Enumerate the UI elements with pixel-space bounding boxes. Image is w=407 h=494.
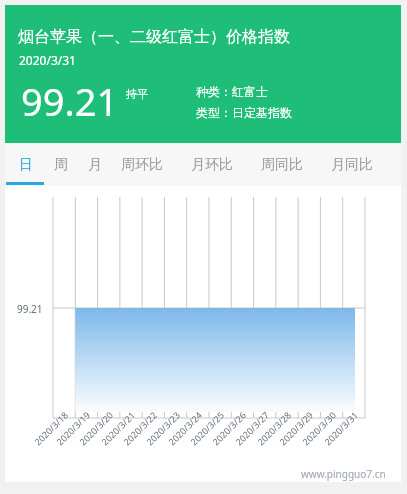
staticText: 月 xyxy=(88,156,102,174)
button[interactable]: 月同比 xyxy=(323,143,381,186)
staticText: 2020/3/25 xyxy=(174,409,226,461)
staticText: 2020/3/30 xyxy=(286,409,338,461)
staticText: www.pingguo7.cn xyxy=(301,467,386,481)
button[interactable]: 月 xyxy=(79,143,111,186)
staticText: 2020/3/23 xyxy=(130,409,182,461)
staticText: 持平 xyxy=(126,87,148,101)
staticText: 周环比 xyxy=(121,156,163,174)
staticText: 2020/3/26 xyxy=(196,409,248,461)
button[interactable]: 周同比 xyxy=(253,143,311,186)
staticText: 种类：红富士 xyxy=(196,84,268,99)
staticText: 2020/3/27 xyxy=(219,409,271,461)
staticText: 周同比 xyxy=(261,156,303,174)
staticText: 2020/3/20 xyxy=(63,409,115,461)
staticText: 2020/3/28 xyxy=(241,409,293,461)
button[interactable]: 月环比 xyxy=(183,143,241,186)
staticText: 周 xyxy=(54,156,68,174)
staticText: 2020/3/22 xyxy=(107,409,159,461)
staticText: 烟台苹果（一、二级红富士）价格指数 xyxy=(18,27,290,47)
staticText: 日 xyxy=(19,156,33,174)
button[interactable]: 日 xyxy=(10,143,42,186)
staticText: 2020/3/29 xyxy=(263,409,315,461)
staticText: 99.21 xyxy=(17,302,43,316)
staticText: 2020/3/19 xyxy=(40,409,92,461)
staticText: 2020/3/21 xyxy=(85,409,137,461)
staticText: 2020/3/31 xyxy=(308,409,360,461)
staticText: 2020/3/18 xyxy=(18,409,70,461)
staticText: 类型：日定基指数 xyxy=(196,105,292,120)
button[interactable]: 周环比 xyxy=(113,143,171,186)
button[interactable]: 周 xyxy=(45,143,77,186)
staticText: 月环比 xyxy=(191,156,233,174)
staticText: 2020/3/31 xyxy=(19,52,76,68)
staticText: 2020/3/24 xyxy=(152,409,204,461)
staticText: 月同比 xyxy=(331,156,373,174)
staticText: 99.21 xyxy=(21,75,119,127)
